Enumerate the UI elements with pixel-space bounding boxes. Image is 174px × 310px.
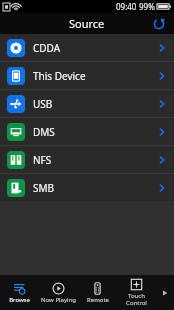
staticText: CDDA: [33, 41, 61, 55]
staticText: Remote: [87, 296, 109, 304]
staticText: This Device: [33, 69, 86, 83]
staticText: Now Playing: [41, 296, 76, 304]
staticText: NFS: [33, 153, 52, 167]
button[interactable]: CDDA: [0, 34, 174, 61]
button[interactable]: DMS: [0, 118, 174, 145]
button[interactable]: This Device: [0, 62, 174, 89]
button[interactable]: USB: [0, 90, 174, 117]
button[interactable]: Remote: [78, 275, 117, 310]
staticText: SMB: [33, 181, 55, 195]
staticText: Source: [69, 16, 105, 31]
button[interactable]: SMB: [0, 174, 174, 201]
button[interactable]: NFS: [0, 146, 174, 173]
button[interactable]: Browse: [0, 275, 39, 310]
button[interactable]: Touch Control: [117, 275, 156, 310]
staticText: USB: [33, 97, 53, 111]
staticText: Touch Control: [126, 292, 147, 307]
button[interactable]: Now Playing: [39, 275, 78, 310]
staticText: DMS: [33, 125, 55, 139]
button[interactable]: Refresh: [150, 15, 168, 33]
staticText: 99%: [139, 1, 155, 12]
staticText: 09:40: [116, 1, 137, 12]
staticText: Browse: [9, 296, 30, 304]
button[interactable]: More tabs: [156, 275, 174, 310]
